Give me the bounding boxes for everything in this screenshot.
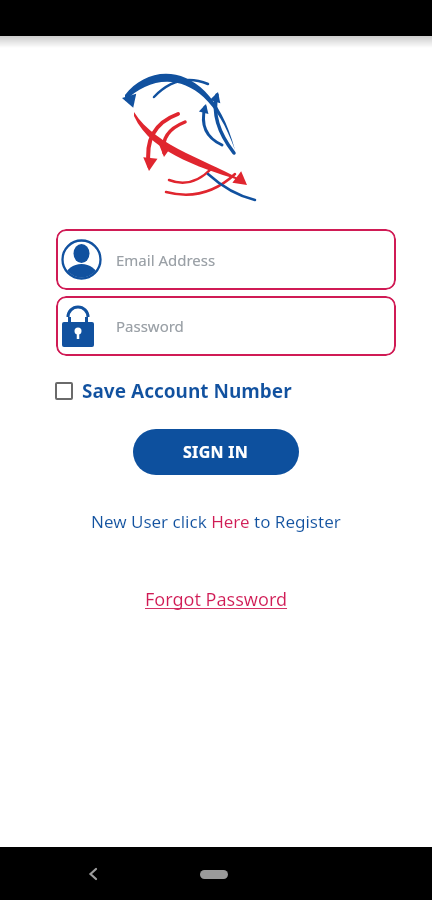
staticText: New User click Here to Register (91, 510, 341, 533)
button[interactable]: Forgot Password (0, 587, 432, 612)
staticText: Save Account Number (82, 378, 292, 404)
button[interactable]: New User click Here to Register (0, 510, 432, 533)
staticText: Email Address (116, 250, 216, 270)
button[interactable]: SIGN IN (133, 429, 299, 475)
staticText: Forgot Password (145, 587, 288, 612)
staticText: SIGN IN (183, 441, 249, 463)
button[interactable] (78, 859, 108, 889)
button[interactable]: Save Account Number (55, 378, 292, 404)
button[interactable]: Password (56, 296, 396, 356)
staticText: Password (116, 316, 184, 336)
button[interactable]: Email Address (56, 229, 396, 290)
